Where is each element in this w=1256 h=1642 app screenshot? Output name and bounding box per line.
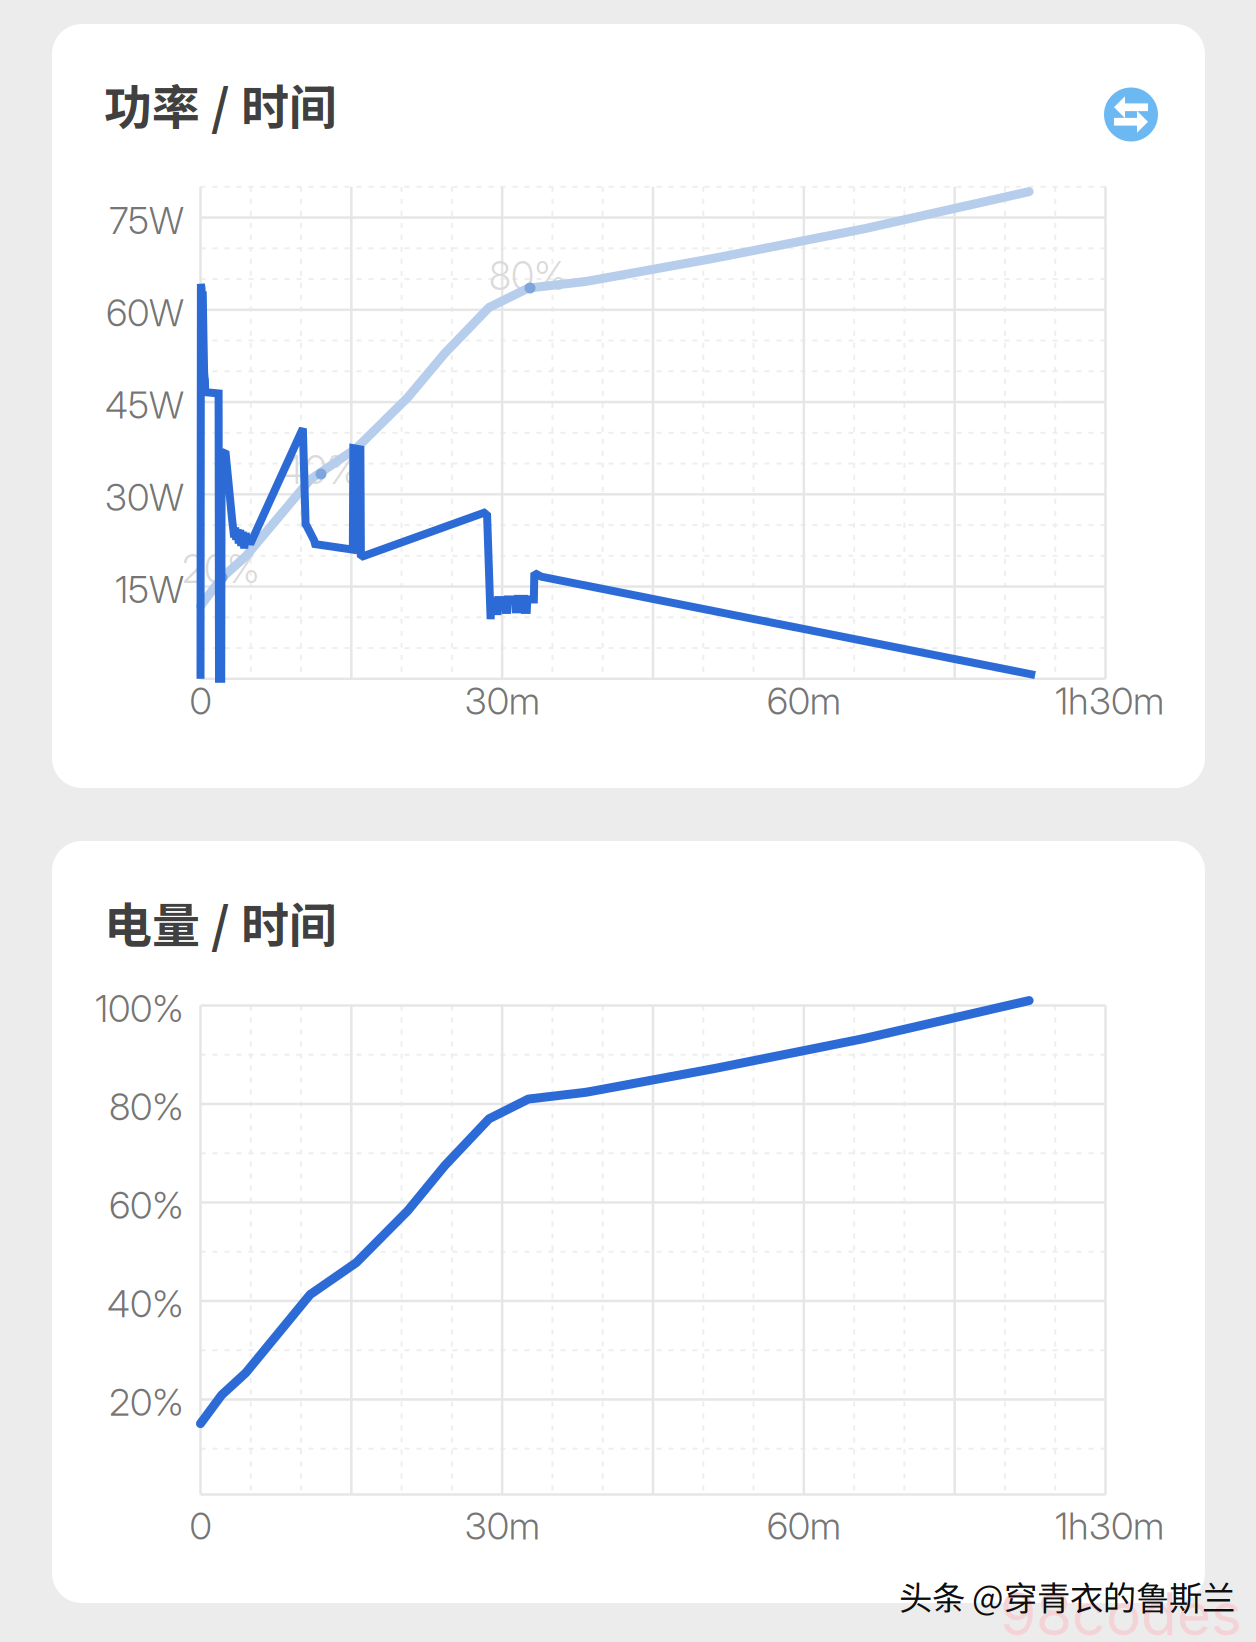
staticText: 60m [767,1503,841,1549]
staticText: 15W [115,567,184,612]
staticText: 0 [189,1503,211,1549]
staticText: 60W [106,290,184,335]
button[interactable]: Swap series [1103,86,1159,142]
staticText: 40% [107,1281,184,1326]
staticText: 40% [280,447,360,493]
staticText: 60m [767,678,841,724]
staticText: 功率 / 时间 [104,69,337,139]
staticText: 30W [105,474,184,520]
staticText: 电量 / 时间 [104,887,337,957]
staticText: 60% [109,1183,184,1228]
staticText: 98codes [1000,1578,1242,1642]
staticText: 80% [489,253,567,299]
staticText: 20% [109,1380,184,1425]
staticText: 1h30m [1055,1503,1164,1549]
staticText: 头条 @穿青衣的鲁斯兰 [899,1572,1235,1620]
staticText: 30m [465,678,540,724]
staticText: 80% [109,1084,184,1129]
staticText: 75W [109,198,184,243]
staticText: 45W [105,382,184,427]
staticText: 20% [182,546,260,592]
staticText: 100% [95,986,184,1031]
staticText: 1h30m [1055,678,1164,724]
staticText: 30m [465,1503,540,1549]
staticText: 0 [189,678,211,724]
